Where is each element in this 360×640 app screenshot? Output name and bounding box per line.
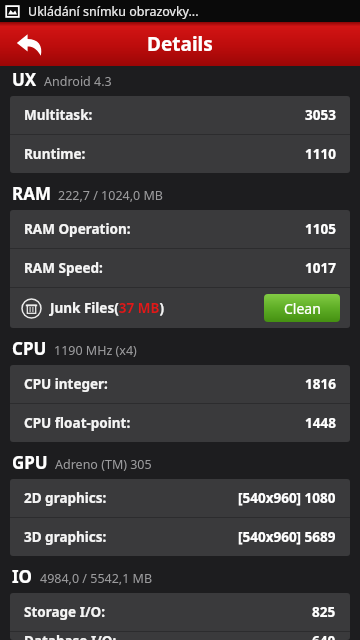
- staticText: Junk Files(37 MB): [50, 299, 165, 317]
- staticText: GPU: [12, 451, 48, 474]
- staticText: CPU: [12, 337, 47, 360]
- staticText: RAM: [12, 182, 51, 205]
- button[interactable]: Multitask:: [10, 96, 350, 134]
- staticText: Storage I/O:: [24, 603, 106, 621]
- staticText: 3D graphics:: [24, 528, 107, 546]
- button[interactable]: RAM Speed:: [10, 249, 350, 287]
- staticText: 1448: [305, 414, 336, 432]
- staticText: [540x960] 5689: [238, 528, 336, 546]
- staticText: Runtime:: [24, 145, 86, 163]
- staticText: UX: [12, 68, 37, 91]
- staticText: Adreno (TM) 305: [55, 456, 152, 473]
- button[interactable]: 2D graphics:: [10, 479, 350, 517]
- staticText: CPU integer:: [24, 375, 108, 393]
- button[interactable]: Storage I/O:: [10, 593, 350, 631]
- button[interactable]: Back: [0, 22, 58, 66]
- staticText: IO: [12, 565, 33, 588]
- staticText: Ukládání snímku obrazovky...: [28, 3, 199, 20]
- staticText: 222,7 / 1024,0 MB: [58, 187, 163, 204]
- staticText: Details: [147, 31, 213, 57]
- staticText: 1190 MHz (x4): [54, 342, 137, 359]
- staticText: 1816: [305, 375, 336, 393]
- button[interactable]: CPU integer:: [10, 365, 350, 403]
- button[interactable]: Database I/O:: [10, 632, 350, 640]
- staticText: 2D graphics:: [24, 489, 107, 507]
- staticText: [540x960] 1080: [238, 489, 336, 507]
- staticText: 1105: [305, 220, 336, 238]
- button[interactable]: RAM Operation:: [10, 210, 350, 248]
- staticText: 3053: [305, 106, 336, 124]
- staticText: Android 4.3: [44, 73, 112, 90]
- staticText: 825: [312, 603, 336, 621]
- staticText: Multitask:: [24, 106, 93, 124]
- button[interactable]: Clean: [264, 294, 340, 322]
- button[interactable]: Runtime:: [10, 135, 350, 173]
- staticText: RAM Speed:: [24, 259, 103, 277]
- staticText: CPU float-point:: [24, 414, 131, 432]
- staticText: 1017: [305, 259, 336, 277]
- button[interactable]: 3D graphics:: [10, 518, 350, 556]
- staticText: RAM Operation:: [24, 220, 131, 238]
- button[interactable]: CPU float-point:: [10, 404, 350, 442]
- staticText: 1110: [305, 145, 336, 163]
- staticText: Database I/O:: [24, 632, 117, 640]
- staticText: 640: [312, 632, 336, 640]
- staticText: Clean: [284, 299, 321, 318]
- staticText: 4984,0 / 5542,1 MB: [40, 570, 153, 587]
